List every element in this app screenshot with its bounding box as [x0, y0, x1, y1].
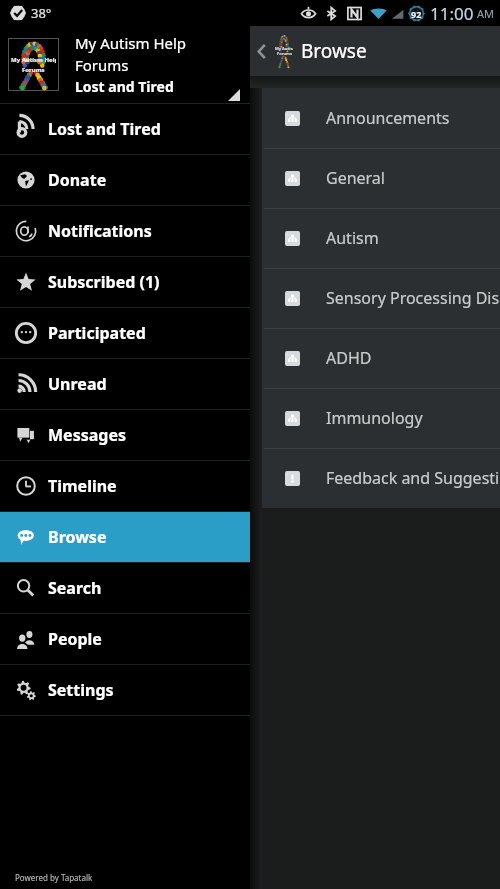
staticText: General: [326, 167, 385, 189]
button[interactable]: Sensory Processing Disorder: [262, 268, 500, 328]
button[interactable]: Settings: [0, 665, 250, 715]
staticText: Lost and Tired: [75, 77, 174, 96]
staticText: Announcements: [326, 107, 450, 129]
staticText: AM: [477, 6, 495, 21]
staticText: Messages: [48, 424, 126, 446]
staticText: Feedback and Suggestions: [326, 467, 500, 489]
staticText: My Autism Help: [275, 46, 293, 51]
staticText: Powered by Tapatalk: [15, 872, 93, 883]
staticText: Participated: [48, 322, 146, 344]
staticText: Forums: [75, 55, 129, 75]
staticText: Browse: [48, 526, 107, 548]
button[interactable]: General: [262, 148, 500, 208]
button[interactable]: People: [0, 614, 250, 664]
button[interactable]: Notifications: [0, 206, 250, 256]
button[interactable]: Feedback and Suggestions: [262, 448, 500, 508]
staticText: Subscribed (1): [48, 271, 160, 293]
button[interactable]: Back: [252, 42, 270, 60]
button[interactable]: Announcements: [262, 88, 500, 148]
button[interactable]: Timeline: [0, 461, 250, 511]
staticText: Immunology: [326, 407, 423, 429]
button[interactable]: ADHD: [262, 328, 500, 388]
button[interactable]: Browse: [0, 512, 250, 562]
staticText: Settings: [48, 679, 114, 701]
staticText: 11:00: [430, 2, 474, 25]
button[interactable]: Unread: [0, 359, 250, 409]
button[interactable]: Autism: [262, 208, 500, 268]
button[interactable]: Subscribed (1): [0, 257, 250, 307]
staticText: My Autism Help: [75, 33, 187, 53]
staticText: Search: [48, 577, 102, 599]
staticText: People: [48, 628, 102, 650]
button[interactable]: Donate: [0, 155, 250, 205]
button[interactable]: Lost and Tired: [0, 104, 250, 154]
staticText: Forums: [277, 51, 292, 56]
staticText: My Autism Help: [11, 56, 56, 64]
staticText: 92: [411, 8, 422, 20]
button[interactable]: Immunology: [262, 388, 500, 448]
staticText: Donate: [48, 169, 107, 191]
button[interactable]: My Autism Help: [0, 26, 250, 103]
staticText: Sensory Processing Disorder: [326, 287, 500, 309]
staticText: Forums: [22, 66, 45, 74]
staticText: Notifications: [48, 220, 152, 242]
staticText: Unread: [48, 373, 107, 395]
staticText: Lost and Tired: [48, 118, 161, 140]
staticText: 38°: [31, 4, 52, 22]
button[interactable]: Participated: [0, 308, 250, 358]
button[interactable]: Messages: [0, 410, 250, 460]
staticText: Browse: [301, 38, 367, 64]
staticText: Timeline: [48, 475, 117, 497]
staticText: ADHD: [326, 347, 372, 369]
staticText: Autism: [326, 227, 379, 249]
button[interactable]: Search: [0, 563, 250, 613]
